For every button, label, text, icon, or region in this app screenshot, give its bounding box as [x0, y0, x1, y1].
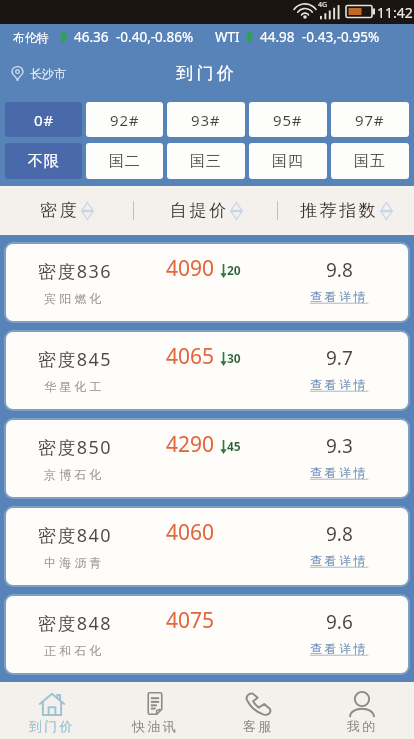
button[interactable]: 查看详情 — [310, 377, 369, 392]
button[interactable]: 国五 — [331, 143, 409, 179]
staticText: 国二 — [109, 152, 141, 171]
button[interactable]: 国四 — [249, 143, 327, 179]
staticText: 自提价 — [170, 200, 229, 221]
staticText: 93# — [191, 110, 221, 130]
button[interactable]: 密度840 — [6, 508, 408, 585]
button[interactable]: 长沙市 — [0, 60, 76, 87]
button[interactable]: 密度 — [0, 186, 133, 235]
staticText: -0.43,-0.95% — [302, 28, 380, 46]
staticText: 4060 — [166, 518, 215, 547]
staticText: 正和石化 — [44, 643, 105, 658]
button[interactable]: 95# — [249, 102, 327, 137]
staticText: 9.7 — [326, 345, 353, 371]
staticText: 快油讯 — [132, 718, 178, 734]
staticText: 45 — [227, 438, 241, 454]
staticText: 4290 — [166, 430, 215, 459]
staticText: 97# — [355, 110, 385, 130]
button[interactable]: 查看详情 — [310, 641, 369, 656]
staticText: 华星化工 — [44, 379, 105, 394]
staticText: 中海沥青 — [44, 555, 105, 570]
staticText: 京博石化 — [44, 467, 105, 482]
staticText: 11:42 — [377, 3, 413, 22]
button[interactable]: 客服 — [206, 682, 310, 739]
staticText: 长沙市 — [30, 66, 66, 81]
button[interactable]: 密度845 — [6, 332, 408, 409]
button[interactable]: 密度836 — [6, 244, 408, 321]
button[interactable]: 0# — [5, 102, 82, 137]
staticText: 95# — [273, 110, 303, 130]
button[interactable]: 查看详情 — [310, 289, 369, 304]
button[interactable]: 92# — [86, 102, 163, 137]
staticText: 密度845 — [38, 347, 112, 372]
staticText: 44.98 — [260, 28, 295, 46]
staticText: 9.6 — [326, 609, 353, 635]
button[interactable]: 密度848 — [6, 596, 408, 673]
staticText: 密度840 — [38, 523, 112, 548]
staticText: 布伦特 — [13, 30, 49, 45]
staticText: 客服 — [243, 718, 274, 734]
staticText: 9.8 — [326, 257, 353, 283]
staticText: 0# — [34, 110, 54, 130]
button[interactable]: 快油讯 — [103, 682, 206, 739]
button[interactable]: 93# — [167, 102, 245, 137]
staticText: 密度836 — [38, 259, 112, 284]
staticText: 4065 — [166, 342, 215, 371]
button[interactable]: 查看详情 — [310, 465, 369, 480]
staticText: 宾阳燃化 — [44, 291, 105, 306]
staticText: 9.8 — [326, 521, 353, 547]
staticText: 密度 — [40, 200, 80, 221]
staticText: 不限 — [28, 152, 60, 171]
staticText: 国四 — [272, 152, 304, 171]
button[interactable]: 推荐指数 — [278, 186, 414, 235]
staticText: 到门价 — [29, 718, 75, 734]
staticText: 国五 — [354, 152, 386, 171]
staticText: 20 — [227, 262, 241, 278]
staticText: 我的 — [347, 718, 378, 734]
staticText: -0.40,-0.86% — [116, 28, 194, 46]
staticText: 46.36 — [74, 28, 109, 46]
staticText: 9.3 — [326, 433, 353, 459]
button[interactable]: 国三 — [167, 143, 245, 179]
button[interactable]: 查看详情 — [310, 553, 369, 568]
staticText: 到门价 — [176, 63, 238, 84]
staticText: 密度850 — [38, 435, 112, 460]
staticText: WTI — [215, 28, 240, 46]
button[interactable]: 自提价 — [134, 186, 277, 235]
button[interactable]: 不限 — [5, 143, 82, 179]
staticText: 92# — [110, 110, 140, 130]
staticText: 30 — [227, 350, 241, 366]
staticText: 密度848 — [38, 611, 112, 636]
staticText: 推荐指数 — [300, 200, 379, 221]
button[interactable]: 我的 — [310, 682, 414, 739]
staticText: 4G — [318, 0, 328, 10]
staticText: 国三 — [190, 152, 222, 171]
button[interactable]: 国二 — [86, 143, 163, 179]
button[interactable]: 到门价 — [0, 682, 103, 739]
staticText: 4075 — [166, 606, 215, 635]
button[interactable]: 密度850 — [6, 420, 408, 497]
button[interactable]: 97# — [331, 102, 409, 137]
staticText: 4090 — [166, 254, 215, 283]
